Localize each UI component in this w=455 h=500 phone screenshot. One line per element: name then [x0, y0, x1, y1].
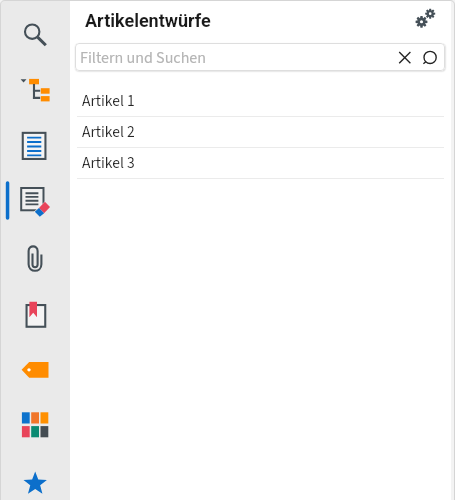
button[interactable]: Drafts	[0, 176, 70, 224]
staticText: Artikel 3	[82, 152, 135, 174]
button[interactable]: Artikel 3	[70, 148, 451, 179]
button[interactable]: Settings	[415, 7, 439, 31]
button[interactable]: Categories	[0, 401, 70, 449]
staticText: Filtern und Suchen	[80, 47, 207, 70]
button[interactable]: Search	[420, 45, 444, 69]
button[interactable]: Filtern und Suchen	[75, 43, 445, 71]
button[interactable]: Artikel 1	[70, 86, 451, 117]
button[interactable]: Documents	[0, 122, 70, 170]
staticText: Artikel 2	[82, 121, 135, 143]
staticText: Artikel 1	[82, 90, 135, 112]
staticText: Artikelentwürfe	[85, 10, 211, 31]
button[interactable]: Favourites	[0, 459, 70, 500]
button[interactable]: Attachments	[0, 236, 70, 284]
button[interactable]: Artikel 2	[70, 117, 451, 148]
button[interactable]: Bookmarks	[0, 292, 70, 340]
button[interactable]: Search	[0, 12, 70, 60]
button[interactable]: Tags	[0, 351, 70, 399]
button[interactable]: Clear	[396, 45, 420, 69]
button[interactable]: Structure	[0, 68, 70, 116]
